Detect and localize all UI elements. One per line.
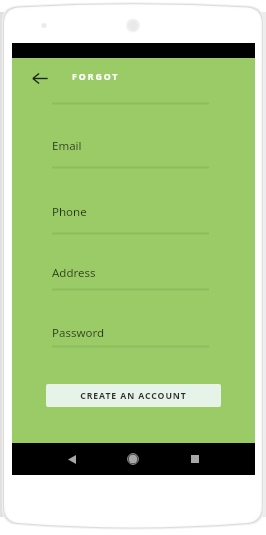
staticText: Phone [52,204,87,220]
button[interactable]: Home [120,443,146,475]
button[interactable]: Back [59,443,85,475]
button[interactable]: CREATE AN ACCOUNT [46,384,221,407]
staticText: Address [52,265,96,281]
staticText: Password [52,325,105,341]
staticText: Email [52,138,82,154]
staticText: CREATE AN ACCOUNT [80,390,187,402]
staticText: FORGOT [72,71,120,83]
button[interactable]: Back [24,64,56,92]
button[interactable]: Recent apps [182,443,208,475]
